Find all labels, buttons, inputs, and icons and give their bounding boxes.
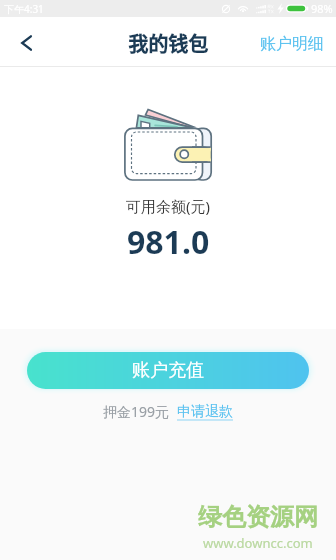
staticText: 申请退款 <box>177 403 233 421</box>
staticText: 账户明细 <box>260 34 324 54</box>
staticText: www.downcc.com <box>203 534 313 552</box>
button[interactable]: 账户明细 <box>248 22 336 66</box>
staticText: 账户充值 <box>132 359 204 382</box>
button[interactable]: Back <box>4 20 49 65</box>
staticText: 押金199元 <box>103 402 170 421</box>
staticText: 可用余额(元) <box>126 196 211 216</box>
button[interactable]: 申请退款 <box>177 403 233 421</box>
staticText: 我的钱包 <box>128 29 208 58</box>
staticText: 下午4:31 <box>4 2 44 16</box>
staticText: 981.0 <box>127 220 210 264</box>
button[interactable]: 账户充值 <box>27 352 309 389</box>
staticText: 绿色资源网 <box>198 502 318 532</box>
staticText: 98% <box>311 1 333 16</box>
